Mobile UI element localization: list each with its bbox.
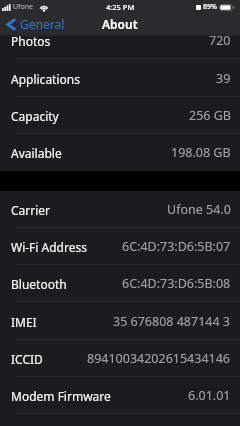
button[interactable]: Available [0, 134, 240, 171]
button[interactable]: Back to General [6, 16, 65, 32]
button[interactable]: IMEI [0, 303, 240, 340]
staticText: Carrier [11, 202, 51, 218]
staticText: 6C:4D:73:D6:5B:07 [122, 238, 231, 255]
button[interactable]: Carrier [0, 191, 240, 228]
button[interactable]: Bluetooth [0, 265, 240, 302]
staticText: ICCID [11, 351, 43, 367]
staticText: Wi-Fi Address [11, 239, 87, 255]
button[interactable]: Modem Firmware [0, 377, 240, 414]
staticText: IMEI [11, 314, 37, 330]
staticText: 89% [203, 2, 217, 12]
staticText: 4:25 PM [106, 2, 135, 12]
staticText: Ufone [13, 2, 34, 12]
staticText: 6.01.01 [188, 387, 231, 404]
staticText: 198.08 GB [171, 144, 231, 161]
staticText: About [102, 16, 138, 32]
button[interactable]: ICCID [0, 340, 240, 377]
button[interactable]: Wi-Fi Address [0, 228, 240, 265]
staticText: 89410034202615434146 [87, 350, 231, 367]
staticText: Ufone 54.0 [167, 201, 231, 218]
staticText: 6C:4D:73:D6:5B:08 [122, 275, 231, 292]
staticText: 39 [216, 70, 231, 87]
staticText: Photos [11, 33, 51, 49]
staticText: 35 676808 487144 3 [113, 313, 231, 330]
other: Back to General [6, 18, 16, 31]
staticText: 720 [209, 32, 231, 49]
staticText: Applications [11, 71, 80, 87]
staticText: General [20, 16, 65, 32]
staticText: Modem Firmware [11, 388, 111, 404]
staticText: Bluetooth [11, 276, 67, 292]
button[interactable]: Applications [0, 60, 240, 97]
button[interactable]: Photos [0, 22, 240, 59]
staticText: Available [11, 145, 62, 161]
staticText: 256 GB [189, 107, 231, 124]
staticText: Capacity [11, 108, 59, 124]
button[interactable]: Capacity [0, 97, 240, 134]
